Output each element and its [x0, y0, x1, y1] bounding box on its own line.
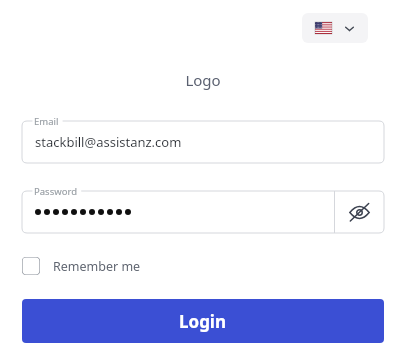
- staticText: Password: [34, 185, 77, 198]
- button[interactable]: Remember me: [22, 255, 141, 277]
- staticText: Email: [34, 115, 59, 128]
- staticText: Login: [179, 310, 227, 333]
- staticText: Logo: [22, 70, 384, 90]
- button[interactable]: Email: [22, 115, 384, 163]
- button[interactable]: Login: [22, 299, 384, 343]
- button[interactable]: Select language: [302, 13, 368, 43]
- staticText: Remember me: [53, 258, 141, 275]
- staticText: stackbill@assistanz.com: [35, 133, 182, 151]
- button[interactable]: Hide password: [334, 191, 384, 233]
- button[interactable]: Password: [22, 185, 384, 233]
